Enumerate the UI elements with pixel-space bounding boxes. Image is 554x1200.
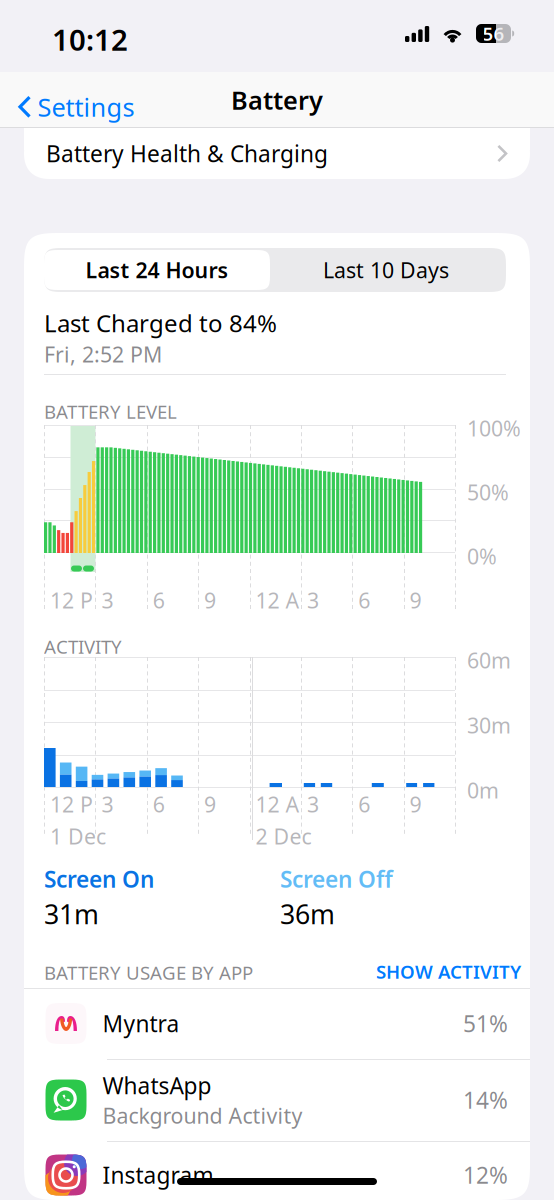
button[interactable]: Last 10 Days xyxy=(270,250,502,290)
staticText: Screen Off xyxy=(280,864,393,894)
staticText: 56 xyxy=(482,21,504,46)
staticText: 6 xyxy=(153,586,165,614)
staticText: 30m xyxy=(467,711,511,739)
staticText: 2 Dec xyxy=(255,822,311,850)
button[interactable]: Myntra xyxy=(24,988,530,1059)
staticText: Last Charged to 84% xyxy=(44,307,277,339)
staticText: 9 xyxy=(410,586,422,614)
staticText: Last 10 Days xyxy=(323,256,449,284)
staticText: 36m xyxy=(280,896,335,931)
staticText: Last 24 Hours xyxy=(85,256,228,284)
staticText: ACTIVITY xyxy=(44,634,122,659)
button[interactable]: Screen On xyxy=(44,864,154,931)
staticText: 12 A xyxy=(255,790,299,818)
button[interactable]: Screen Off xyxy=(280,864,393,931)
button[interactable]: WhatsApp xyxy=(24,1059,530,1141)
staticText: 10:12 xyxy=(52,20,128,59)
staticText: 9 xyxy=(204,790,216,818)
staticText: Screen On xyxy=(44,864,154,894)
staticText: Battery xyxy=(231,83,323,117)
staticText: 9 xyxy=(410,790,422,818)
staticText: 6 xyxy=(358,790,370,818)
button[interactable]: Last 24 Hours xyxy=(44,250,270,290)
staticText: Myntra xyxy=(102,1008,179,1038)
staticText: Background Activity xyxy=(102,1101,302,1130)
staticText: WhatsApp xyxy=(102,1070,211,1100)
button[interactable]: Battery xyxy=(0,85,554,115)
staticText: 100% xyxy=(467,414,521,442)
staticText: 3 xyxy=(307,586,319,614)
button[interactable]: Battery Health & Charging xyxy=(24,128,530,179)
staticText: 12 A xyxy=(255,586,299,614)
staticText: 12 P xyxy=(50,790,93,818)
staticText: 3 xyxy=(101,790,113,818)
staticText: 3 xyxy=(101,586,113,614)
staticText: SHOW ACTIVITY xyxy=(376,959,521,984)
staticText: 1 Dec xyxy=(50,822,106,850)
staticText: BATTERY LEVEL xyxy=(44,399,177,424)
staticText: 60m xyxy=(467,646,511,674)
staticText: Settings xyxy=(37,90,134,124)
button[interactable]: Settings xyxy=(14,84,138,130)
staticText: 12% xyxy=(463,1160,508,1190)
staticText: 0m xyxy=(467,776,499,804)
staticText: 0% xyxy=(467,542,497,570)
staticText: 6 xyxy=(153,790,165,818)
staticText: Battery Health & Charging xyxy=(46,138,328,168)
staticText: 9 xyxy=(204,586,216,614)
staticText: 3 xyxy=(307,790,319,818)
staticText: 14% xyxy=(463,1085,508,1115)
staticText: 12 P xyxy=(50,586,93,614)
staticText: BATTERY USAGE BY APP xyxy=(44,960,253,985)
staticText: 6 xyxy=(358,586,370,614)
staticText: 56 xyxy=(482,21,504,46)
button[interactable]: Instagram xyxy=(24,1141,530,1200)
staticText: 31m xyxy=(44,896,99,931)
staticText: 50% xyxy=(467,478,509,506)
staticText: Instagram xyxy=(102,1160,213,1190)
staticText: 51% xyxy=(463,1008,508,1038)
button[interactable]: SHOW ACTIVITY xyxy=(376,959,521,984)
staticText: Fri, 2:52 PM xyxy=(44,340,162,368)
